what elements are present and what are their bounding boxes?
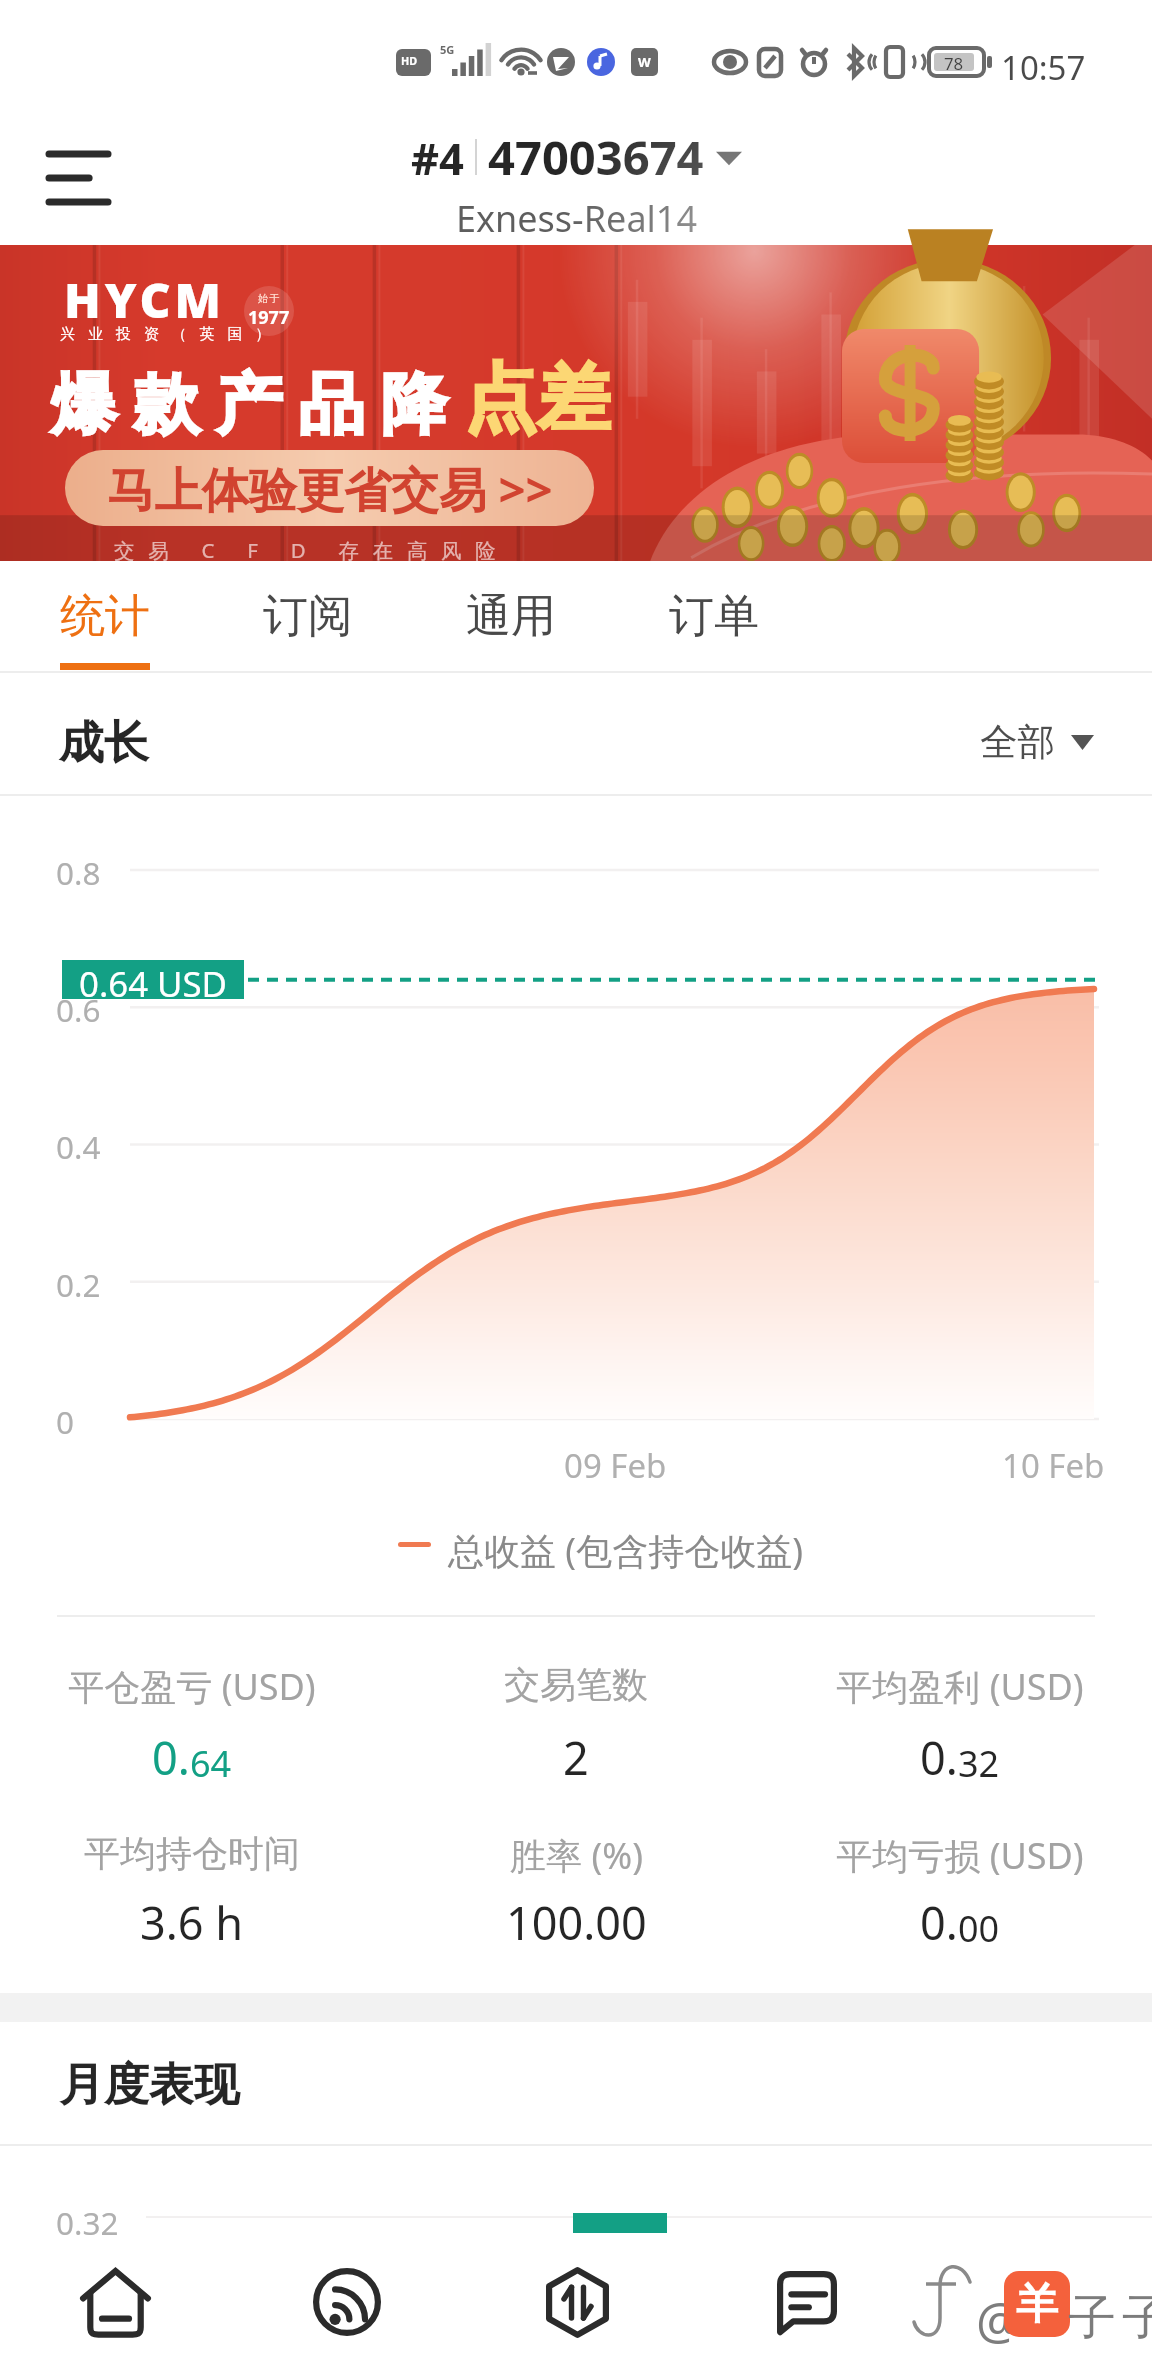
staticText: 0.6 — [56, 988, 101, 1031]
staticText: W — [638, 53, 651, 71]
staticText: 0.4 — [56, 1125, 101, 1168]
button[interactable]: #4 — [411, 125, 742, 243]
staticText: 始于 — [258, 292, 281, 305]
staticText: 通用 — [466, 588, 556, 645]
staticText: 0.8 — [56, 851, 101, 894]
staticText: 47003674 — [488, 125, 704, 189]
staticText: 马上体验更省交易 >> — [107, 456, 553, 521]
staticText: 交易笔数 — [504, 1662, 648, 1707]
staticText: 总收益 (包含持仓收益) — [448, 1526, 803, 1575]
button[interactable]: Signals — [231, 2238, 462, 2376]
staticText: Exness-Real14 — [456, 194, 698, 243]
staticText: 0. — [920, 1892, 958, 1953]
staticText: 成长 — [59, 715, 149, 772]
staticText: 100.00 — [506, 1892, 647, 1953]
staticText: 羊 — [1016, 2278, 1058, 2331]
staticText: 交易 C F D 存在高风险 — [114, 536, 510, 564]
staticText: 爆款产品降 — [51, 363, 464, 446]
button[interactable]: 统计 — [3, 561, 206, 673]
button[interactable]: 订阅 — [206, 561, 409, 673]
staticText: 78 — [944, 52, 964, 75]
staticText: 月度表现 — [59, 2057, 239, 2114]
staticText: 5G — [440, 42, 455, 57]
staticText: HD — [401, 53, 418, 68]
button[interactable]: 订单 — [612, 561, 815, 673]
button[interactable]: Profile — [922, 2238, 1152, 2376]
staticText: 平均盈利 (USD) — [836, 1662, 1084, 1711]
staticText: 64 — [190, 1739, 232, 1788]
staticText: 订阅 — [263, 588, 353, 645]
staticText: 平均亏损 (USD) — [836, 1831, 1084, 1880]
staticText: 0 — [56, 1400, 75, 1443]
button[interactable]: 全部 — [980, 719, 1094, 766]
button[interactable]: Trade — [462, 2238, 692, 2376]
button[interactable]: HYCM — [0, 245, 1152, 561]
button[interactable]: Menu — [30, 130, 126, 226]
staticText: 子子 — [1065, 2288, 1152, 2348]
button[interactable]: Home — [0, 2238, 231, 2376]
staticText: 0. — [920, 1727, 958, 1788]
staticText: 0.2 — [56, 1263, 101, 1306]
staticText: 2 — [563, 1727, 589, 1788]
staticText: 平均持仓时间 — [84, 1831, 300, 1876]
staticText: #4 — [411, 128, 464, 187]
staticText: 09 Feb — [564, 1443, 667, 1488]
button[interactable]: 通用 — [409, 561, 612, 673]
staticText: 0.64 USD — [79, 960, 228, 999]
staticText: 00 — [958, 1904, 1000, 1953]
staticText: HYCM — [64, 267, 225, 332]
staticText: @ — [976, 2285, 1022, 2354]
staticText: 32 — [958, 1739, 1000, 1788]
staticText: 平仓盈亏 (USD) — [68, 1662, 316, 1711]
staticText: 点差 — [464, 353, 611, 444]
staticText: 兴业投资（英国） — [60, 325, 284, 344]
staticText: 0.32 — [56, 2201, 119, 2244]
staticText: 10 Feb — [1002, 1443, 1105, 1488]
button[interactable]: Chat — [692, 2238, 922, 2376]
staticText: 1977 — [248, 305, 290, 330]
staticText: 订单 — [669, 588, 759, 645]
staticText: 3.6 h — [140, 1892, 244, 1953]
staticText: 10:57 — [1001, 45, 1086, 90]
staticText: 全部 — [980, 719, 1055, 766]
staticText: 0. — [152, 1727, 190, 1788]
staticText: 胜率 (%) — [510, 1831, 643, 1880]
staticText: 统计 — [60, 588, 150, 645]
